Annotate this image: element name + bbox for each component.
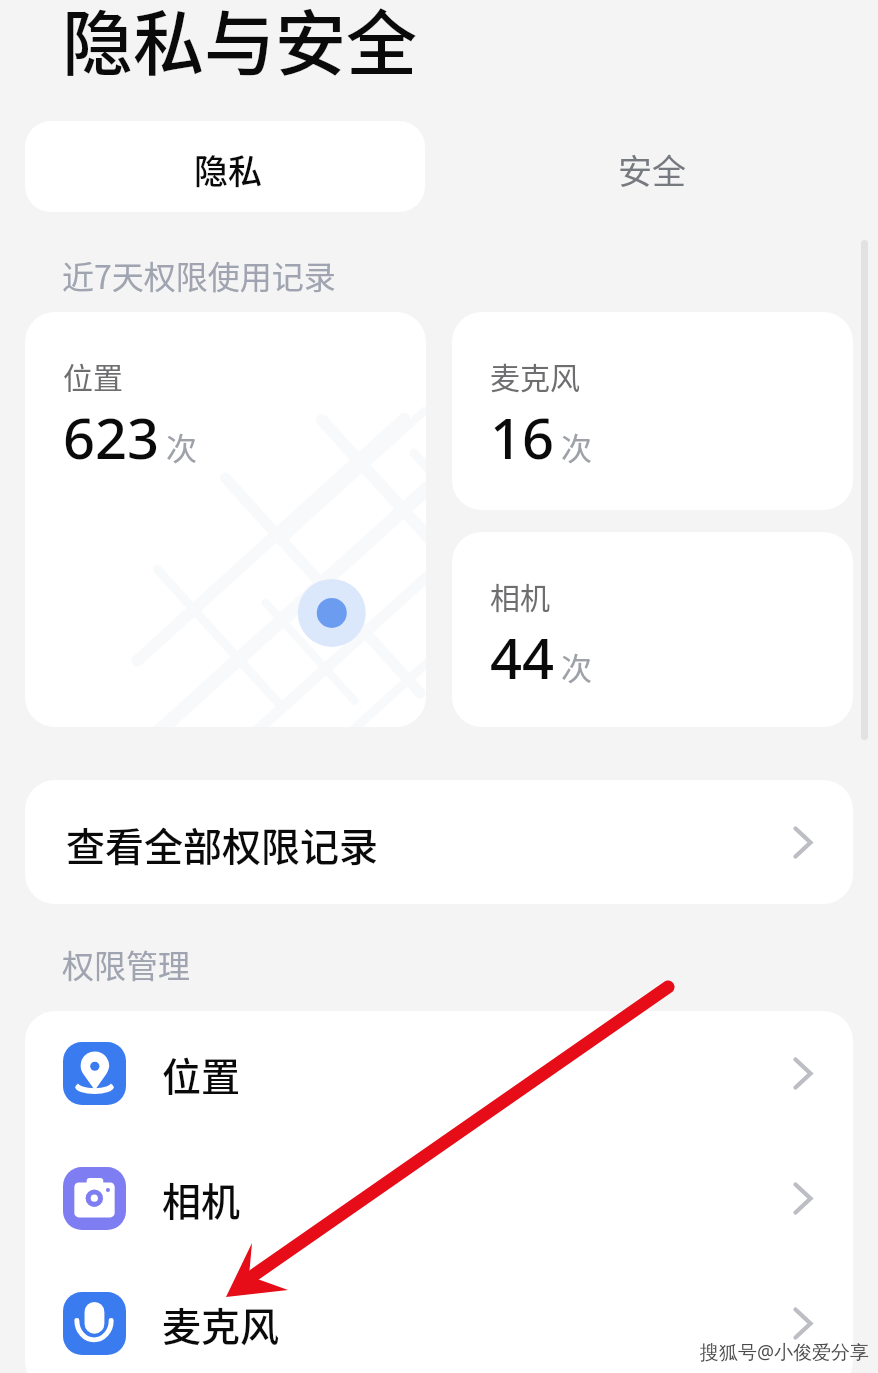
staticText: 隐私 [194, 145, 262, 194]
staticText: 近7天权限使用记录 [62, 252, 336, 298]
staticText: 麦克风 [490, 354, 580, 397]
staticText: 次 [561, 644, 592, 689]
staticText: 相机 [162, 1171, 241, 1227]
staticText: 623 [63, 399, 160, 475]
staticText: 查看全部权限记录 [66, 816, 379, 872]
button[interactable]: 位置 [25, 1011, 853, 1136]
button[interactable]: 相机 [25, 1136, 853, 1261]
button[interactable]: 查看全部权限记录 [25, 780, 853, 904]
staticText: 搜狐号@小俊爱分享 [700, 1339, 870, 1365]
staticText: 位置 [162, 1046, 241, 1102]
button[interactable]: 安全 [452, 121, 852, 212]
staticText: 安全 [618, 145, 686, 194]
staticText: 隐私与安全 [62, 0, 418, 90]
button[interactable]: 相机 [452, 532, 853, 727]
staticText: 权限管理 [62, 941, 191, 987]
other: 打开 [794, 827, 812, 858]
staticText: 次 [561, 424, 592, 469]
button[interactable]: 位置 [25, 312, 426, 727]
staticText: 44 [490, 619, 555, 695]
other: 麦克风 [63, 1292, 126, 1355]
staticText: 位置 [63, 354, 123, 397]
button[interactable]: 麦克风 [452, 312, 853, 510]
other: 位置 [63, 1042, 126, 1105]
other: 相机 [63, 1167, 126, 1230]
staticText: 16 [490, 399, 555, 475]
other: 打开 [794, 1308, 812, 1339]
button[interactable]: 隐私 [25, 121, 425, 212]
button[interactable]: 麦克风 [25, 1261, 853, 1373]
staticText: 次 [166, 424, 197, 469]
staticText: 相机 [490, 574, 550, 617]
other: 打开 [794, 1058, 812, 1089]
other: 打开 [794, 1183, 812, 1214]
staticText: 麦克风 [162, 1296, 280, 1352]
